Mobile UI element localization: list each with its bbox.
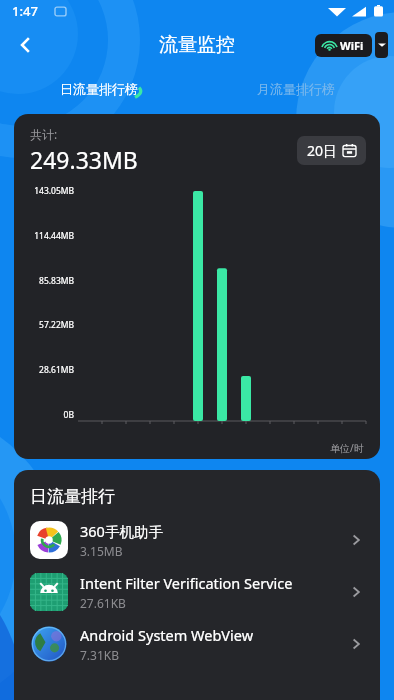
staticText: 114.44MB [34,230,74,242]
staticText: 28.61MB [39,364,74,376]
staticText: 27.61KB [80,595,126,611]
staticText: 共计: [30,126,58,142]
staticText: 20日 [307,141,338,160]
button[interactable]: Intent Filter Verification Service [14,573,380,611]
staticText: 月流量排行榜 [257,81,335,97]
staticText: 249.33MB [30,144,138,175]
button[interactable]: 360手机助手 [14,521,380,559]
staticText: 日流量排行榜 [60,81,138,97]
button[interactable]: 20日 [297,136,366,165]
button[interactable]: More [375,32,388,58]
button[interactable]: WiFi [315,34,372,57]
staticText: 360手机助手 [80,521,163,541]
staticText: WiFi [340,38,364,53]
staticText: 日流量排行 [30,486,115,507]
staticText: 0B [63,409,74,421]
staticText: 57.22MB [39,319,74,331]
button[interactable]: Back [4,23,48,67]
staticText: 3.15MB [80,543,123,559]
button[interactable]: 月流量排行榜 [197,74,394,104]
staticText: 1:47 [12,2,38,20]
staticText: 85.83MB [39,275,74,287]
staticText: 143.05MB [34,185,74,197]
button[interactable]: 日流量排行榜 [0,74,197,104]
button[interactable]: Android System WebView [14,625,380,663]
staticText: Intent Filter Verification Service [80,573,293,593]
staticText: Android System WebView [80,625,254,645]
staticText: 流量监控 [159,33,235,57]
staticText: 7.31KB [80,647,120,663]
staticText: 单位/时 [330,441,364,455]
